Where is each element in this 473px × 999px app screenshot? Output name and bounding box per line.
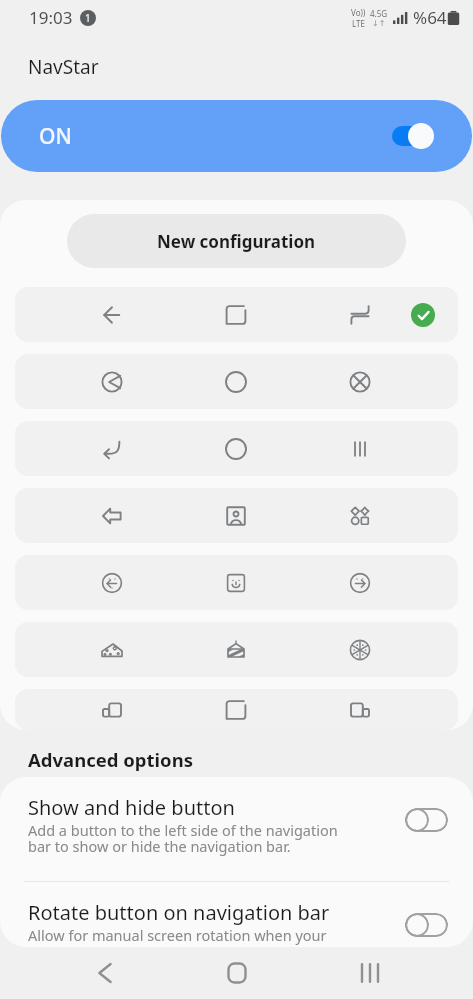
button[interactable] bbox=[15, 488, 458, 543]
staticText: 19:03 bbox=[29, 6, 73, 29]
staticText: Advanced options bbox=[28, 747, 193, 772]
staticText: 1 bbox=[85, 11, 91, 25]
staticText: %64 bbox=[413, 6, 447, 29]
staticText: LTE bbox=[352, 18, 365, 29]
staticText: Add a button to the left side of the nav… bbox=[28, 820, 338, 857]
button[interactable] bbox=[15, 689, 458, 730]
staticText: Rotate button on navigation bar bbox=[28, 899, 330, 926]
staticText: 4.5G bbox=[370, 8, 388, 19]
staticText: Vo)) bbox=[351, 7, 366, 18]
button[interactable]: Back bbox=[83, 951, 127, 995]
staticText: NavStar bbox=[28, 54, 99, 80]
button[interactable]: Show and hide button bbox=[0, 777, 473, 881]
staticText: Allow for manual screen rotation when yo… bbox=[28, 925, 327, 945]
button[interactable] bbox=[15, 555, 458, 610]
button[interactable]: New configuration bbox=[67, 214, 406, 268]
button[interactable] bbox=[15, 354, 458, 409]
button[interactable] bbox=[15, 421, 458, 476]
button[interactable]: ON bbox=[1, 100, 472, 172]
staticText: New configuration bbox=[157, 230, 316, 253]
staticText: ↓↑ bbox=[372, 19, 386, 28]
button[interactable] bbox=[15, 287, 458, 342]
button[interactable]: Rotate button on navigation bar bbox=[0, 882, 473, 947]
staticText: Show and hide button bbox=[28, 794, 235, 821]
button[interactable]: Recents bbox=[348, 951, 392, 995]
staticText: ON bbox=[39, 122, 72, 151]
button[interactable] bbox=[15, 622, 458, 677]
button[interactable]: Home bbox=[215, 951, 259, 995]
